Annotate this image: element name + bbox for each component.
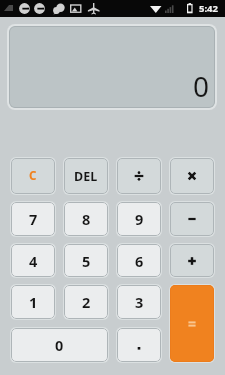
button[interactable]: Equals	[170, 285, 214, 362]
button[interactable]: Multiply	[170, 158, 214, 194]
staticText: 0	[193, 67, 210, 105]
staticText: 6	[135, 251, 144, 271]
button[interactable]: 2	[64, 285, 108, 319]
staticText: 1	[29, 292, 38, 312]
button[interactable]: DEL	[64, 158, 108, 194]
staticText: 7	[29, 209, 38, 229]
button[interactable]: 7	[11, 202, 55, 236]
staticText: C	[29, 168, 37, 184]
staticText: 2	[82, 292, 91, 312]
button[interactable]: Divide	[117, 158, 161, 194]
button[interactable]: Plus	[170, 244, 214, 277]
staticText: 5	[82, 251, 91, 271]
button[interactable]: Decimal point	[117, 328, 161, 362]
button[interactable]: C	[11, 158, 55, 194]
button[interactable]: Display	[9, 26, 215, 108]
button[interactable]: 9	[117, 202, 161, 236]
button[interactable]: 3	[117, 285, 161, 319]
button[interactable]: 8	[64, 202, 108, 236]
button[interactable]: 6	[117, 244, 161, 277]
button[interactable]: 4	[11, 244, 55, 277]
staticText: 5:42	[199, 2, 218, 15]
button[interactable]: 5	[64, 244, 108, 277]
staticText: 0	[55, 335, 64, 355]
staticText: DEL	[74, 168, 98, 185]
staticText: 9	[135, 209, 144, 229]
staticText: 8	[82, 209, 91, 229]
button[interactable]: 0	[11, 328, 108, 362]
button[interactable]: 1	[11, 285, 55, 319]
staticText: 3	[135, 292, 144, 312]
button[interactable]: Minus	[170, 202, 214, 236]
staticText: 4	[29, 251, 38, 271]
